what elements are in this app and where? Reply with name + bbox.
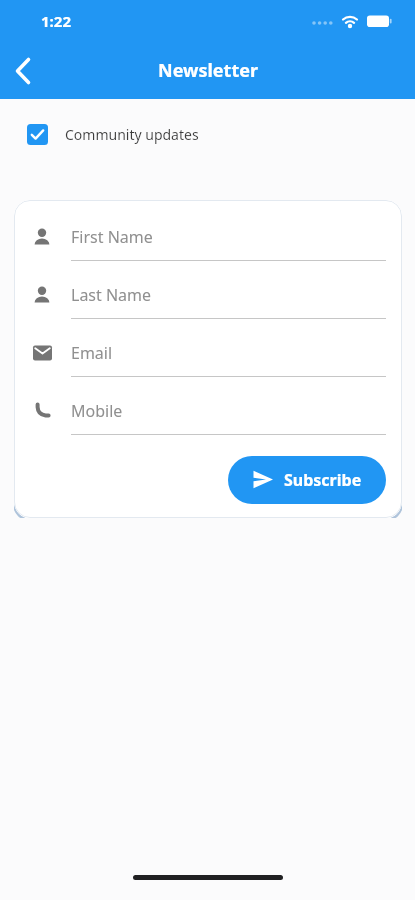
- staticText: Subscribe: [284, 469, 362, 491]
- button[interactable]: Last Name: [33, 261, 386, 319]
- staticText: First Name: [71, 226, 153, 248]
- staticText: Last Name: [71, 284, 152, 306]
- button[interactable]: First Name: [33, 203, 386, 261]
- staticText: Mobile: [71, 400, 123, 422]
- button[interactable]: Community updates: [27, 124, 199, 145]
- staticText: 1:22: [41, 11, 71, 31]
- button[interactable]: [6, 53, 42, 89]
- staticText: Community updates: [65, 125, 199, 144]
- staticText: Newsletter: [158, 58, 258, 83]
- button[interactable]: Mobile: [33, 377, 386, 435]
- button[interactable]: Email: [33, 319, 386, 377]
- staticText: Email: [71, 342, 113, 364]
- button[interactable]: Subscribe: [228, 456, 386, 504]
